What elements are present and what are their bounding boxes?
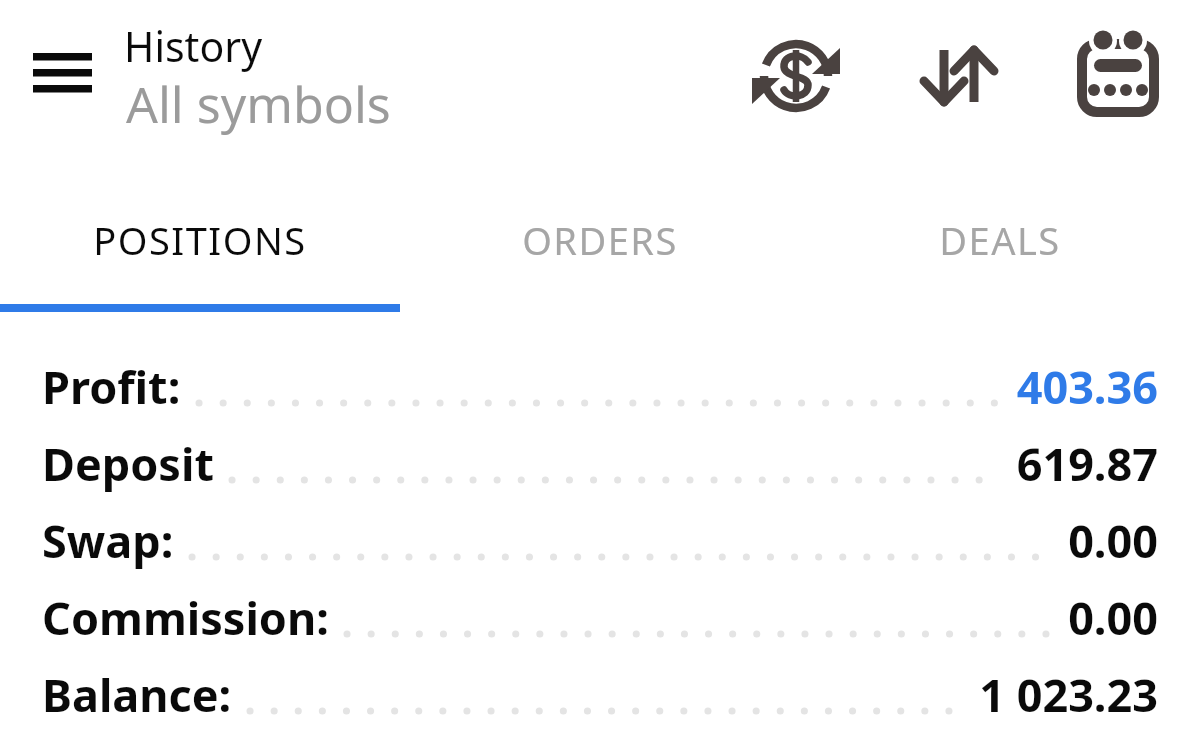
staticText: Commission: bbox=[42, 587, 329, 648]
button[interactable]: DEALS bbox=[800, 190, 1200, 308]
staticText: DEALS bbox=[939, 214, 1061, 266]
button[interactable]: All symbols bbox=[126, 70, 391, 138]
staticText: 403.36 bbox=[1016, 356, 1158, 417]
staticText: All symbols bbox=[126, 70, 391, 138]
button[interactable]: Select date bbox=[1068, 24, 1168, 124]
staticText: 1 023.23 bbox=[979, 664, 1158, 725]
button[interactable]: Profit: bbox=[0, 348, 1200, 425]
button[interactable]: Commission: bbox=[0, 579, 1200, 656]
button[interactable]: POSITIONS bbox=[0, 190, 400, 308]
staticText: 0.00 bbox=[1068, 510, 1158, 571]
button[interactable]: ORDERS bbox=[400, 190, 800, 308]
staticText: Balance: bbox=[42, 664, 232, 725]
staticText: History bbox=[124, 18, 263, 74]
staticText: 619.87 bbox=[1016, 433, 1158, 494]
staticText: Swap: bbox=[42, 510, 174, 571]
button[interactable]: Sort bbox=[910, 26, 1006, 122]
staticText: Profit: bbox=[42, 356, 181, 417]
staticText: POSITIONS bbox=[93, 214, 307, 266]
button[interactable]: History bbox=[124, 18, 263, 74]
button[interactable]: Balance: bbox=[0, 656, 1200, 732]
staticText: 0.00 bbox=[1068, 587, 1158, 648]
staticText: ORDERS bbox=[522, 214, 678, 266]
button[interactable]: Currency exchange bbox=[748, 28, 844, 124]
staticText: Deposit bbox=[42, 433, 214, 494]
button[interactable]: Swap: bbox=[0, 502, 1200, 579]
button[interactable]: Open navigation menu bbox=[20, 42, 108, 106]
button[interactable]: Deposit bbox=[0, 425, 1200, 502]
